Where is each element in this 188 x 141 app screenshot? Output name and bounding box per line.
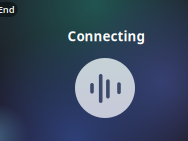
staticText: Connecting	[67, 27, 144, 45]
button[interactable]: End	[0, 2, 18, 17]
staticText: End	[0, 3, 15, 16]
